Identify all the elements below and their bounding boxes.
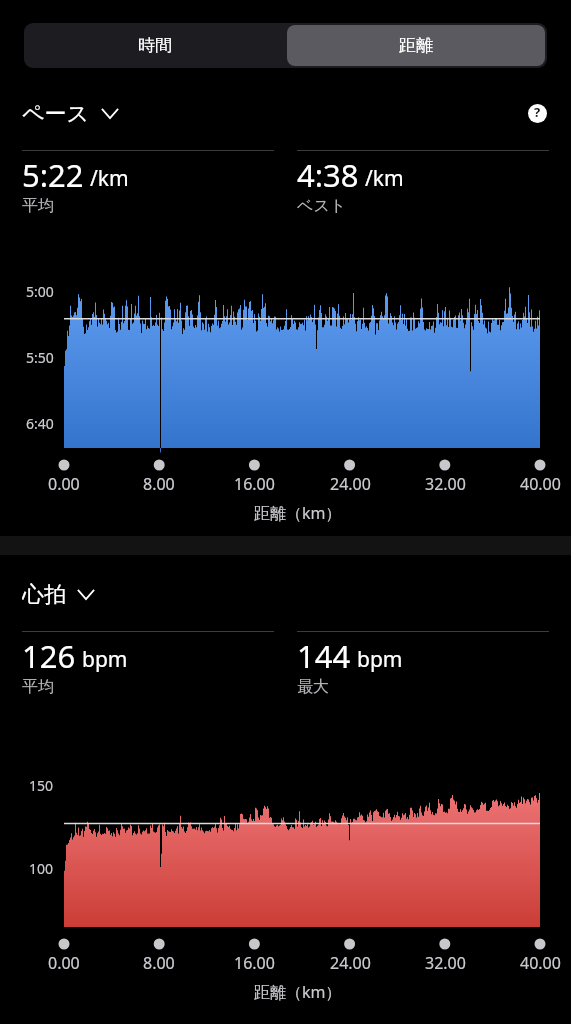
button[interactable]: Help xyxy=(526,102,548,124)
staticText: 16.00 xyxy=(234,473,275,495)
button[interactable]: 時間 xyxy=(24,23,285,68)
button[interactable]: 4:38 xyxy=(297,154,549,216)
staticText: /km xyxy=(365,164,404,193)
staticText: ペース xyxy=(22,100,90,126)
staticText: 6:40 xyxy=(26,414,54,433)
staticText: /km xyxy=(90,164,129,193)
button[interactable]: 距離 xyxy=(287,25,545,66)
button[interactable]: 心拍 xyxy=(22,581,95,607)
staticText: 4:38 xyxy=(297,154,359,196)
staticText: 144 xyxy=(297,635,351,677)
staticText: 8.00 xyxy=(143,952,175,974)
staticText: 距離（km） xyxy=(254,502,342,524)
staticText: 150 xyxy=(29,776,54,795)
staticText: 最大 xyxy=(297,677,329,697)
button[interactable]: 144 xyxy=(297,635,549,697)
staticText: 距離 xyxy=(399,35,433,56)
staticText: bpm xyxy=(357,645,403,674)
staticText: 32.00 xyxy=(425,473,466,495)
button[interactable]: 5:22 xyxy=(22,154,274,216)
staticText: 126 xyxy=(22,635,76,677)
staticText: 心拍 xyxy=(22,581,66,607)
staticText: 32.00 xyxy=(425,952,466,974)
staticText: 0.00 xyxy=(48,473,80,495)
staticText: 5:50 xyxy=(26,348,54,367)
staticText: 5:00 xyxy=(26,282,54,301)
staticText: 時間 xyxy=(138,35,172,56)
button[interactable]: ペース xyxy=(22,100,119,126)
staticText: 24.00 xyxy=(330,473,371,495)
staticText: ベスト xyxy=(297,196,347,216)
staticText: bpm xyxy=(82,645,128,674)
button[interactable]: 126 xyxy=(22,635,274,697)
staticText: 0.00 xyxy=(48,952,80,974)
staticText: 16.00 xyxy=(234,952,275,974)
staticText: 平均 xyxy=(22,196,54,216)
staticText: ? xyxy=(534,103,541,121)
staticText: 5:22 xyxy=(22,154,84,196)
staticText: 8.00 xyxy=(143,473,175,495)
staticText: 40.00 xyxy=(520,473,561,495)
staticText: 40.00 xyxy=(520,952,561,974)
staticText: 100 xyxy=(29,859,54,878)
staticText: 平均 xyxy=(22,677,54,697)
staticText: 距離（km） xyxy=(254,981,342,1003)
staticText: 24.00 xyxy=(330,952,371,974)
